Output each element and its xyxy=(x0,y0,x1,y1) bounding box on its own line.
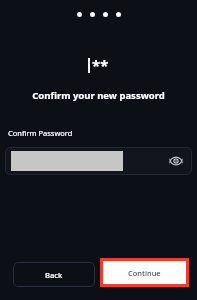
button[interactable]: Back xyxy=(13,262,95,287)
button[interactable]: Continue xyxy=(103,261,186,284)
staticText: Confirm your new password xyxy=(8,89,189,102)
button[interactable]: Show password xyxy=(5,147,192,175)
staticText: Continue xyxy=(128,268,161,278)
staticText: Back xyxy=(45,270,63,280)
staticText: Confirm Password xyxy=(8,128,73,138)
staticText: ** xyxy=(92,55,109,75)
button[interactable]: Show password xyxy=(168,153,184,169)
